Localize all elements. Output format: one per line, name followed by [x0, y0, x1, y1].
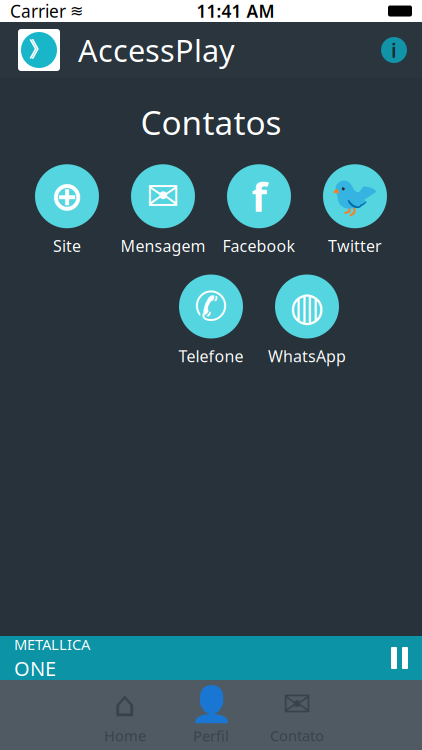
staticText: 👤 — [189, 684, 232, 724]
staticText: i — [391, 37, 397, 63]
staticText: METALLICA — [14, 634, 90, 654]
staticText: ⊕ — [50, 174, 84, 219]
staticText: 》 — [28, 37, 49, 63]
staticText: ONE — [14, 655, 56, 682]
button[interactable]: ⊕ — [19, 164, 115, 256]
button[interactable]: ✉ — [115, 164, 211, 256]
staticText: ✆ — [194, 284, 228, 329]
staticText: Telefone — [178, 345, 243, 367]
staticText: Mensagem — [120, 235, 205, 256]
button[interactable]: f — [211, 164, 307, 256]
staticText: Home — [104, 726, 146, 745]
staticText: 🐦 — [330, 173, 380, 219]
staticText: WhatsApp — [268, 345, 346, 367]
button[interactable]: Information — [372, 28, 416, 72]
button[interactable]: METALLICA — [0, 636, 422, 680]
staticText: ◍ — [289, 284, 324, 329]
staticText: Contatos — [140, 100, 281, 144]
staticText: Site — [53, 235, 81, 256]
staticText: Contato — [270, 726, 324, 745]
button[interactable]: ✉ — [261, 689, 333, 741]
button[interactable]: 🐦 — [307, 164, 403, 256]
button[interactable]: ✆ — [163, 274, 259, 367]
staticText: 11:41 AM — [196, 0, 274, 22]
button[interactable]: ◍ — [259, 274, 355, 367]
staticText: Perfil — [193, 726, 229, 746]
staticText: ⌂ — [114, 685, 136, 724]
staticText: AccessPlay — [78, 30, 235, 70]
button[interactable]: ⌂ — [89, 689, 161, 741]
staticText: ✉ — [282, 685, 311, 724]
staticText: ✉ — [146, 174, 180, 219]
staticText: Carrier — [10, 0, 66, 22]
staticText: Facebook — [222, 235, 295, 256]
staticText: Twitter — [328, 235, 382, 256]
button[interactable]: 👤 — [175, 689, 247, 741]
staticText: f — [251, 170, 266, 223]
staticText: ≋ — [70, 2, 83, 20]
